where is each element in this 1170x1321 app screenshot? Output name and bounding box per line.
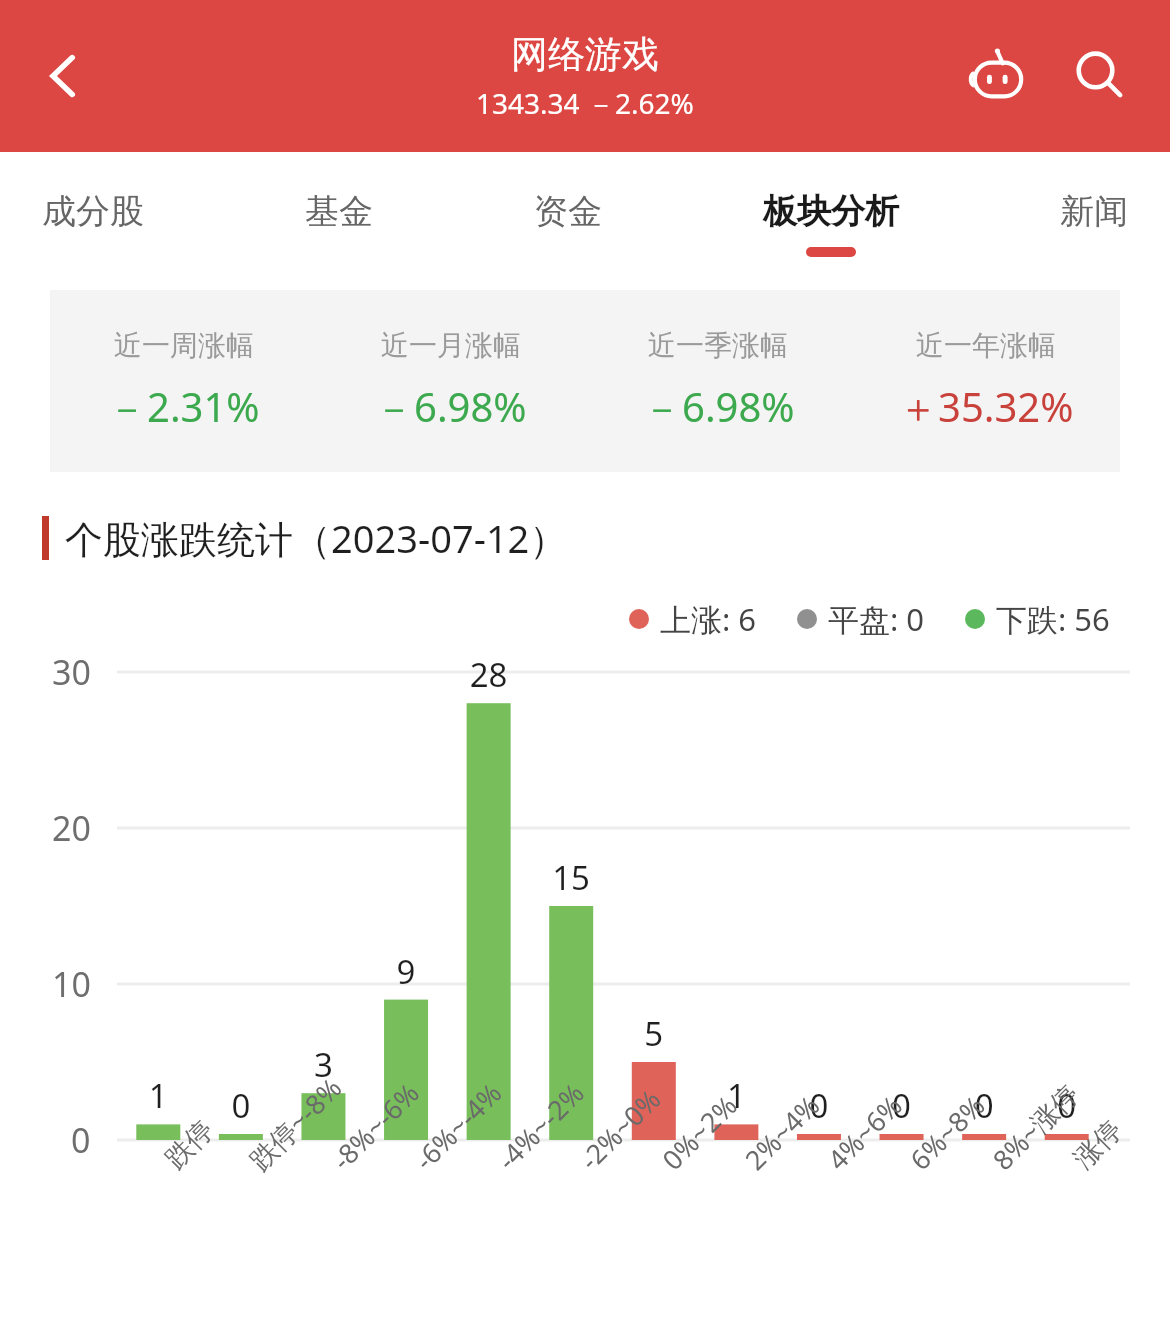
button[interactable]: 近一周涨幅 [50, 328, 317, 434]
staticText: 板块分析 [763, 190, 899, 233]
staticText: －6.98% [374, 379, 527, 434]
staticText: 下跌: 56 [996, 598, 1110, 640]
staticText: 成分股 [42, 190, 144, 233]
button[interactable]: 基金 [299, 190, 379, 247]
staticText: －6.98% [642, 379, 795, 434]
staticText: 平盘: 0 [828, 598, 925, 640]
button[interactable]: 下跌: 56 [965, 598, 1110, 640]
staticText: 近一季涨幅 [648, 328, 788, 363]
button[interactable]: 上涨: 6 [629, 598, 757, 640]
button[interactable]: 板块分析 [757, 190, 905, 257]
staticText: －2.31% [107, 379, 260, 434]
button[interactable]: 近一季涨幅 [584, 328, 852, 434]
staticText: 近一月涨幅 [381, 328, 521, 363]
button[interactable]: 平盘: 0 [797, 598, 925, 640]
staticText: 资金 [534, 190, 602, 233]
button[interactable]: Back [24, 36, 104, 116]
staticText: 网络游戏 [511, 31, 659, 78]
staticText: 基金 [305, 190, 373, 233]
button[interactable]: 成分股 [36, 190, 150, 247]
staticText: 近一周涨幅 [114, 328, 254, 363]
staticText: 上涨: 6 [660, 598, 757, 640]
button[interactable]: 资金 [528, 190, 608, 247]
staticText: 1343.34 －2.62% [476, 84, 694, 122]
button[interactable]: Search [1054, 30, 1146, 122]
button[interactable]: Assistant [952, 30, 1044, 122]
staticText: 近一年涨幅 [916, 328, 1056, 363]
button[interactable]: 新闻 [1054, 190, 1134, 247]
button[interactable]: 近一月涨幅 [317, 328, 584, 434]
staticText: ＋35.32% [898, 379, 1074, 434]
staticText: 新闻 [1060, 190, 1128, 233]
button[interactable]: 近一年涨幅 [852, 328, 1120, 434]
staticText: 个股涨跌统计（2023-07-12） [65, 512, 568, 564]
